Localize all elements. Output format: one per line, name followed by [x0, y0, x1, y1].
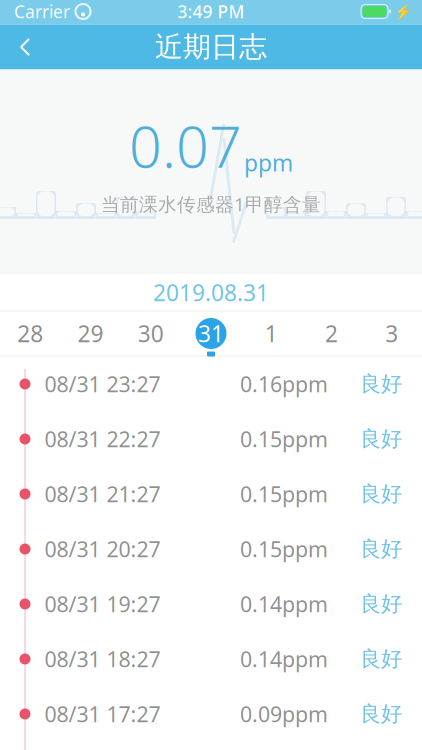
button[interactable]: 29	[60, 310, 121, 356]
staticText: 08/31 21:27	[44, 480, 160, 508]
staticText: 31	[198, 318, 224, 348]
staticText: 0.16ppm	[240, 370, 328, 398]
button[interactable]: 08/31 17:27	[0, 686, 422, 741]
button[interactable]: 28	[0, 310, 60, 356]
staticText: 08/31 20:27	[44, 535, 160, 563]
staticText: 08/31 22:27	[44, 425, 160, 453]
staticText: 良好	[360, 371, 402, 397]
staticText: 3	[385, 318, 398, 348]
staticText: 0.15ppm	[240, 535, 328, 563]
button[interactable]: 08/31 21:27	[0, 466, 422, 521]
staticText: 08/31 18:27	[44, 645, 160, 673]
staticText: 08/31 23:27	[44, 370, 160, 398]
staticText: 良好	[360, 646, 402, 672]
staticText: 1	[265, 318, 278, 348]
staticText: 28	[17, 318, 43, 348]
button[interactable]: 08/31 18:27	[0, 631, 422, 686]
staticText: 2	[325, 318, 338, 348]
button[interactable]: 2	[301, 310, 362, 356]
button[interactable]: 08/31 22:27	[0, 411, 422, 466]
staticText: 良好	[360, 591, 402, 617]
staticText: 29	[77, 318, 103, 348]
staticText: 0.14ppm	[240, 590, 328, 618]
button[interactable]: 08/31 19:27	[0, 576, 422, 631]
button[interactable]: 31	[181, 310, 241, 356]
staticText: 良好	[360, 536, 402, 562]
staticText: 当前溧水传感器1甲醇含量	[101, 192, 321, 216]
staticText: 3:49 PM	[177, 0, 244, 23]
staticText: 08/31 17:27	[44, 700, 160, 728]
staticText: ⚡	[394, 3, 412, 20]
staticText: 30	[138, 318, 164, 348]
staticText: 2019.08.31	[153, 277, 269, 307]
staticText: 0.07	[129, 107, 242, 184]
staticText: 良好	[360, 426, 402, 452]
staticText: ppm	[244, 148, 293, 178]
staticText: Carrier	[14, 0, 70, 23]
button[interactable]: 08/31 23:27	[0, 356, 422, 411]
button[interactable]: 1	[241, 310, 301, 356]
staticText	[70, 0, 75, 23]
button[interactable]: 30	[121, 310, 181, 356]
staticText: 0.09ppm	[240, 700, 328, 728]
button[interactable]: 08/31 20:27	[0, 521, 422, 576]
staticText: 0.15ppm	[240, 480, 328, 508]
button[interactable]: 返回	[0, 24, 50, 69]
staticText: 良好	[360, 701, 402, 727]
staticText: 08/31 19:27	[44, 590, 160, 618]
staticText: 0.15ppm	[240, 425, 328, 453]
staticText: 良好	[360, 481, 402, 507]
staticText: 0.14ppm	[240, 645, 328, 673]
staticText: 近期日志	[155, 30, 267, 64]
button[interactable]: 3	[362, 310, 422, 356]
